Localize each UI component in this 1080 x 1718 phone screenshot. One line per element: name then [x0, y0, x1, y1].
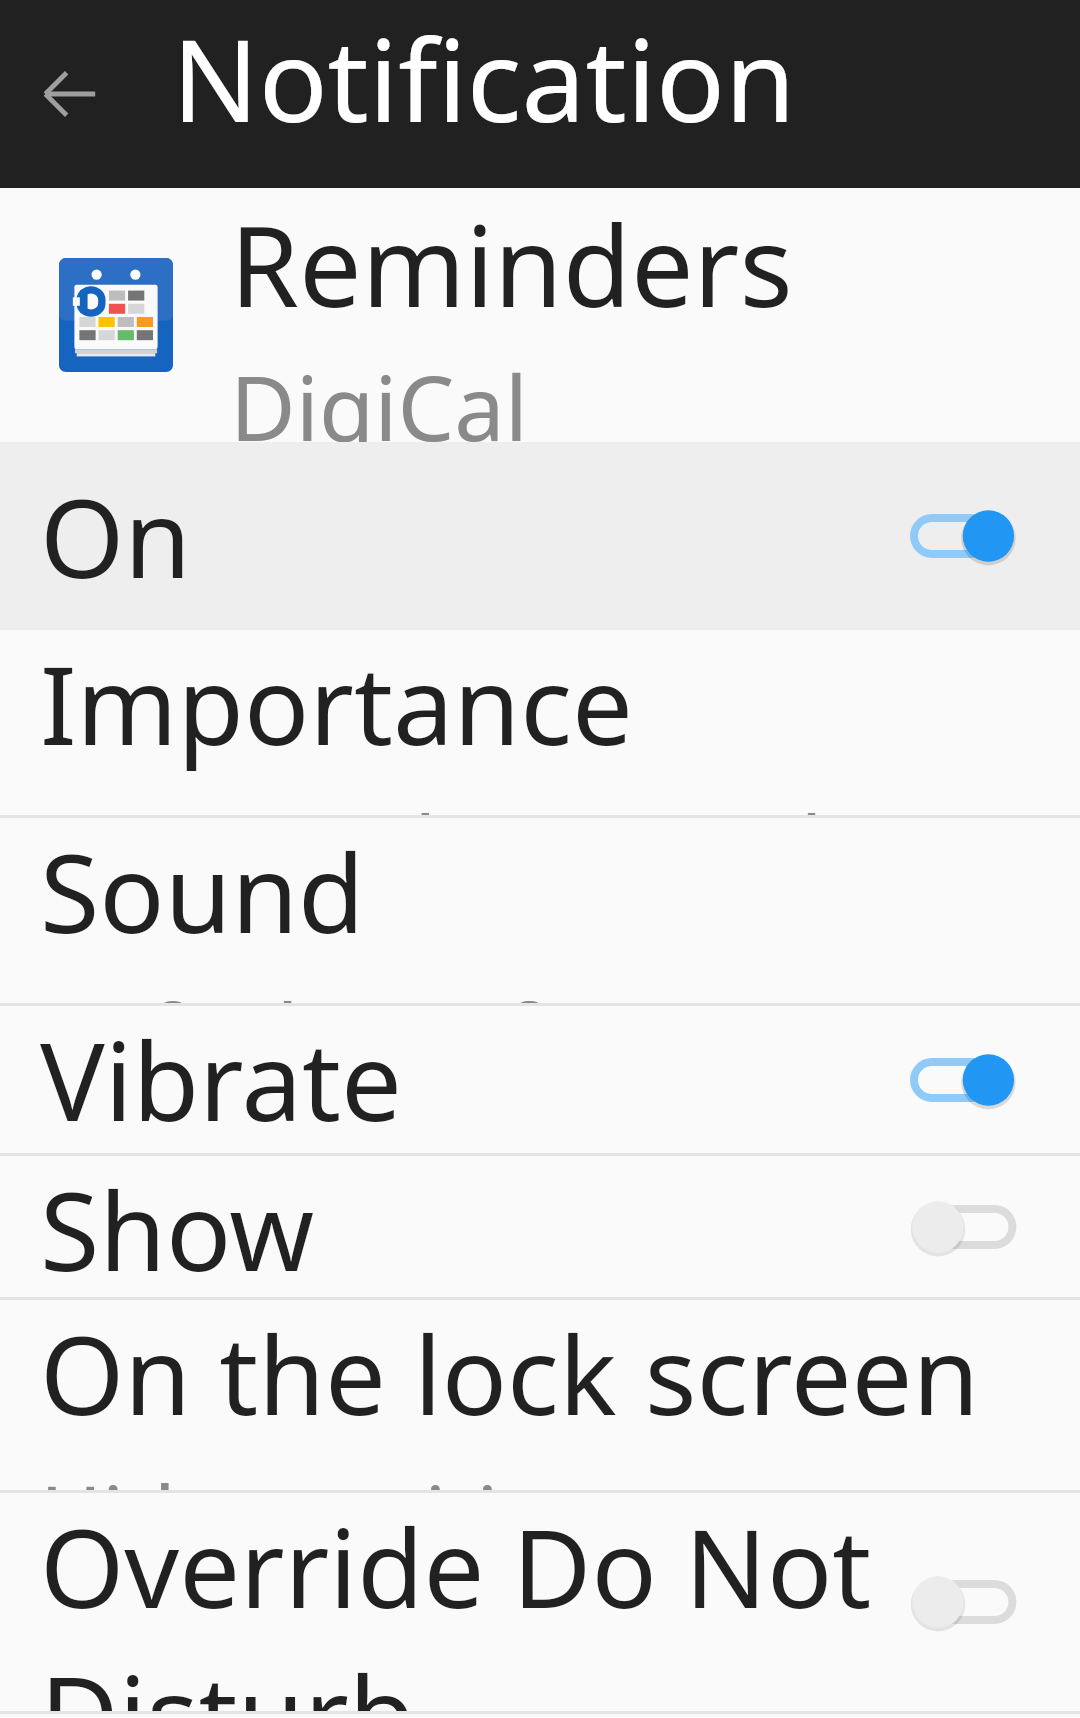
staticText: DigiCal [230, 345, 529, 442]
button[interactable]: Importance [0, 630, 1080, 815]
staticText: Urgent: Always peek. No full screen inte… [40, 787, 1040, 815]
button[interactable]: Back [30, 54, 110, 134]
button[interactable]: On [902, 1035, 1022, 1125]
staticText: On [40, 463, 192, 610]
button[interactable]: On [0, 442, 1080, 630]
staticText: Sound [40, 818, 365, 965]
button[interactable]: On [902, 491, 1022, 581]
button[interactable]: Sound [0, 818, 1080, 1003]
staticText: On the lock screen [40, 1300, 980, 1447]
staticText: Show notification dot [40, 1156, 882, 1297]
staticText: Hide sensitive notification content [40, 1457, 1040, 1490]
button[interactable]: Off [902, 1557, 1022, 1647]
staticText: Override Do Not Disturb [40, 1493, 882, 1711]
button[interactable]: Override Do Not Disturb [0, 1493, 1080, 1711]
staticText: Default notification sound [40, 975, 1040, 1003]
staticText: Reminders [230, 188, 793, 339]
button[interactable]: Show notification dot [0, 1156, 1080, 1297]
button[interactable]: Vibrate [0, 1006, 1080, 1153]
button[interactable]: On the lock screen [0, 1300, 1080, 1490]
button[interactable]: Off [902, 1182, 1022, 1272]
staticText: Notification category [172, 0, 1080, 188]
button[interactable]: Reminders [0, 188, 1080, 442]
staticText: Vibrate [40, 1006, 403, 1153]
staticText: Importance [40, 630, 634, 777]
